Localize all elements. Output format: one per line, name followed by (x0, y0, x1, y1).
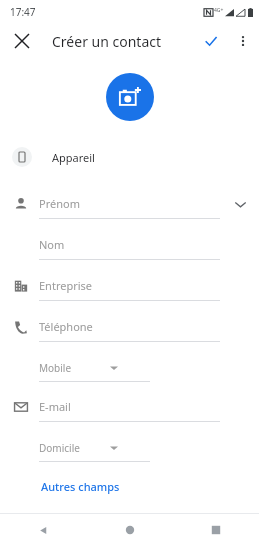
staticText: Mobile (39, 361, 72, 375)
button[interactable]: Enregistrer (195, 25, 227, 57)
staticText: Entreprise (39, 278, 93, 293)
button[interactable]: Domicile (0, 430, 259, 469)
staticText: Nom (39, 237, 65, 252)
button[interactable]: Autres champs (39, 475, 122, 498)
button[interactable]: Entreprise (0, 268, 259, 309)
staticText: 17:47 (10, 5, 36, 19)
staticText: 4G+ (214, 7, 224, 14)
button[interactable]: Fermer (6, 25, 38, 57)
button[interactable]: Prénom (0, 186, 259, 227)
button[interactable]: Plus d'options (227, 25, 259, 57)
button[interactable]: Développer (231, 195, 249, 213)
button[interactable]: Applications récentes (173, 514, 259, 546)
staticText: Appareil (52, 150, 95, 165)
button[interactable]: Ajouter une photo (106, 73, 154, 121)
staticText: Prénom (39, 196, 80, 211)
staticText: Domicile (39, 441, 80, 455)
staticText: Téléphone (39, 319, 93, 334)
button[interactable]: E-mail (0, 389, 259, 430)
button[interactable]: Mobile (0, 350, 259, 389)
button[interactable]: Téléphone (0, 309, 259, 350)
staticText: Créer un contact (52, 32, 162, 51)
staticText: Autres champs (41, 479, 120, 494)
staticText: E-mail (39, 399, 71, 414)
button[interactable]: Appareil (0, 136, 259, 178)
button[interactable]: Nom (0, 227, 259, 268)
button[interactable]: Accueil (87, 514, 173, 546)
button[interactable]: Retour (0, 514, 87, 546)
